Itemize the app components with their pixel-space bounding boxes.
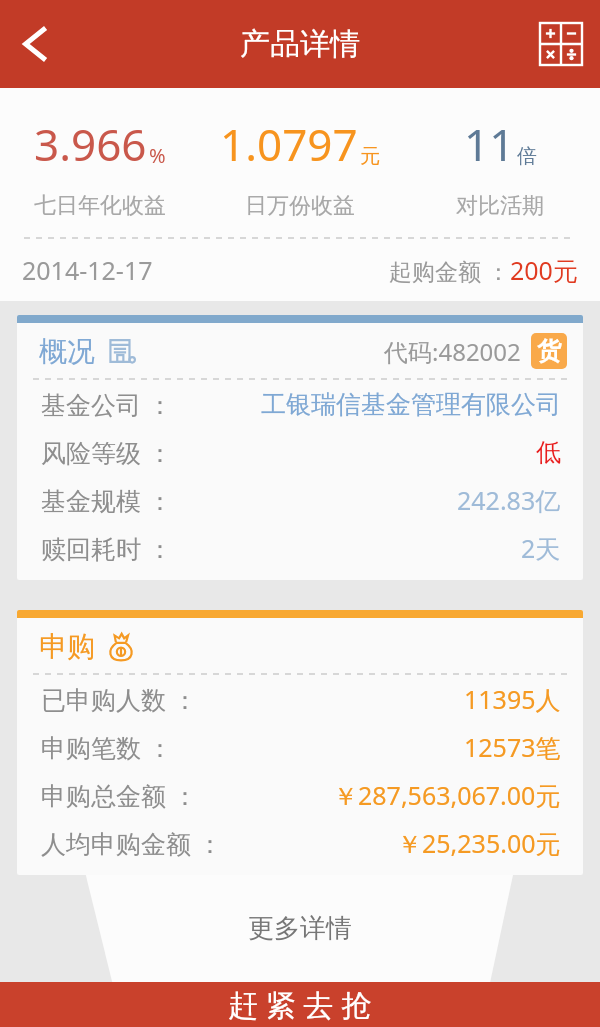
staticText: 申购 xyxy=(39,629,95,664)
staticText: 风险等级 ： xyxy=(41,435,173,469)
staticText: 人均申购金额 ： xyxy=(41,826,223,860)
staticText: 申购总金额 ： xyxy=(41,778,198,812)
staticText: 2014-12-17 xyxy=(22,253,153,287)
button[interactable]: 基金公司 ： xyxy=(17,380,583,428)
staticText: % xyxy=(149,142,166,169)
staticText: 工银瑞信基金管理有限公司 xyxy=(261,389,561,420)
staticText: 12573笔 xyxy=(464,730,561,764)
staticText: ￥25,235.00元 xyxy=(397,826,561,860)
staticText: 代码:482002 xyxy=(384,335,521,368)
staticText: 日万份收益 xyxy=(245,192,355,220)
staticText: 产品详情 xyxy=(240,25,360,63)
button[interactable]: 已申购人数 ： xyxy=(17,675,583,723)
staticText: 基金规模 ： xyxy=(41,483,173,517)
staticText: 已申购人数 ： xyxy=(41,682,198,716)
staticText: 赶 紧 去 抢 xyxy=(228,984,372,1025)
staticText: 242.83亿 xyxy=(457,483,561,517)
staticText: 七日年化收益 xyxy=(34,192,166,220)
staticText: 低 xyxy=(536,437,561,468)
button[interactable]: 更多详情 xyxy=(0,875,600,982)
staticText: 元 xyxy=(360,144,380,169)
staticText: 更多详情 xyxy=(248,912,352,945)
button[interactable]: 风险等级 ： xyxy=(17,428,583,476)
staticText: 3.966 xyxy=(34,114,147,174)
staticText: 11395人 xyxy=(464,682,561,716)
button[interactable]: Calculator xyxy=(532,15,590,73)
button[interactable]: 申购笔数 ： xyxy=(17,723,583,771)
button[interactable]: 人均申购金额 ： xyxy=(17,819,583,867)
button[interactable]: 赎回耗时 ： xyxy=(17,524,583,572)
staticText: 赎回耗时 ： xyxy=(41,531,173,565)
staticText: ￥287,563,067.00元 xyxy=(333,778,561,812)
staticText: 申购笔数 ： xyxy=(41,730,173,764)
button[interactable]: Back xyxy=(6,15,64,73)
staticText: 基金公司 ： xyxy=(41,387,173,421)
staticText: 货 xyxy=(537,336,561,366)
staticText: 200元 xyxy=(510,253,578,287)
staticText: 2天 xyxy=(521,531,561,565)
staticText: 起购金额 ： xyxy=(389,255,510,286)
staticText: 概况 xyxy=(39,334,95,369)
staticText: 倍 xyxy=(517,144,537,169)
staticText: 11 xyxy=(464,114,515,174)
staticText: 1.0797 xyxy=(220,114,358,174)
button[interactable]: 赶 紧 去 抢 xyxy=(0,982,600,1027)
staticText: 对比活期 xyxy=(456,192,544,220)
button[interactable]: 基金规模 ： xyxy=(17,476,583,524)
button[interactable]: 申购总金额 ： xyxy=(17,771,583,819)
